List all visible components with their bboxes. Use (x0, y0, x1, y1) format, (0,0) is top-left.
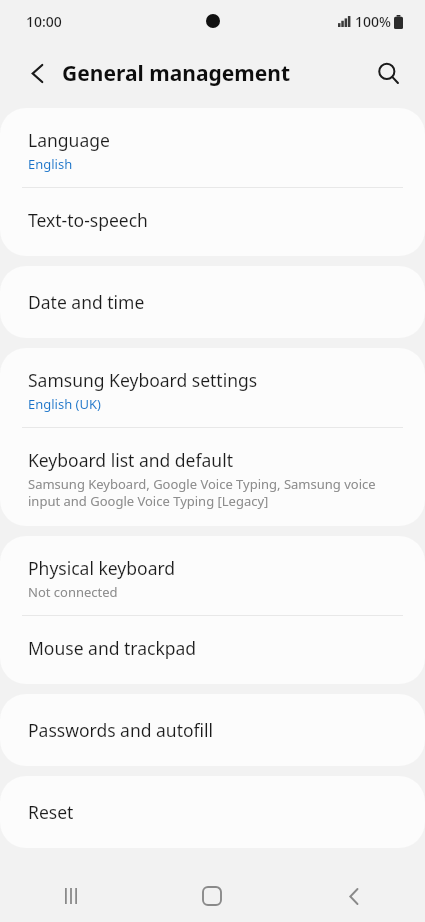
staticText: Language (28, 128, 110, 152)
staticText: English (UK) (28, 395, 101, 413)
staticText: Reset (28, 800, 74, 824)
button[interactable]: Reset (0, 776, 425, 848)
button[interactable]: Date and time (0, 266, 425, 338)
staticText: 100% (355, 12, 391, 31)
button[interactable]: Language (0, 108, 425, 187)
button[interactable]: Back (16, 51, 60, 95)
button[interactable]: Mouse and trackpad (0, 616, 425, 684)
staticText: 10:00 (26, 12, 62, 31)
staticText: Passwords and autofill (28, 718, 214, 742)
button[interactable]: Samsung Keyboard settings (0, 348, 425, 427)
button[interactable]: Search (365, 50, 411, 96)
staticText: English (28, 155, 73, 173)
staticText: Date and time (28, 290, 145, 314)
button[interactable]: Text-to-speech (0, 188, 425, 256)
staticText: Physical keyboard (28, 556, 176, 580)
staticText: Samsung Keyboard settings (28, 368, 258, 392)
button[interactable]: Keyboard list and default (0, 428, 425, 526)
button[interactable]: Recent apps (0, 870, 141, 922)
staticText: Mouse and trackpad (28, 636, 197, 660)
button[interactable]: Passwords and autofill (0, 694, 425, 766)
button[interactable]: Home (141, 870, 283, 922)
staticText: Keyboard list and default (28, 448, 233, 472)
staticText: General management (62, 59, 291, 88)
staticText: Samsung Keyboard, Google Voice Typing, S… (28, 475, 400, 510)
staticText: Text-to-speech (28, 208, 148, 232)
button[interactable]: Back (283, 870, 425, 922)
button[interactable]: Physical keyboard (0, 536, 425, 615)
staticText: Not connected (28, 583, 118, 601)
